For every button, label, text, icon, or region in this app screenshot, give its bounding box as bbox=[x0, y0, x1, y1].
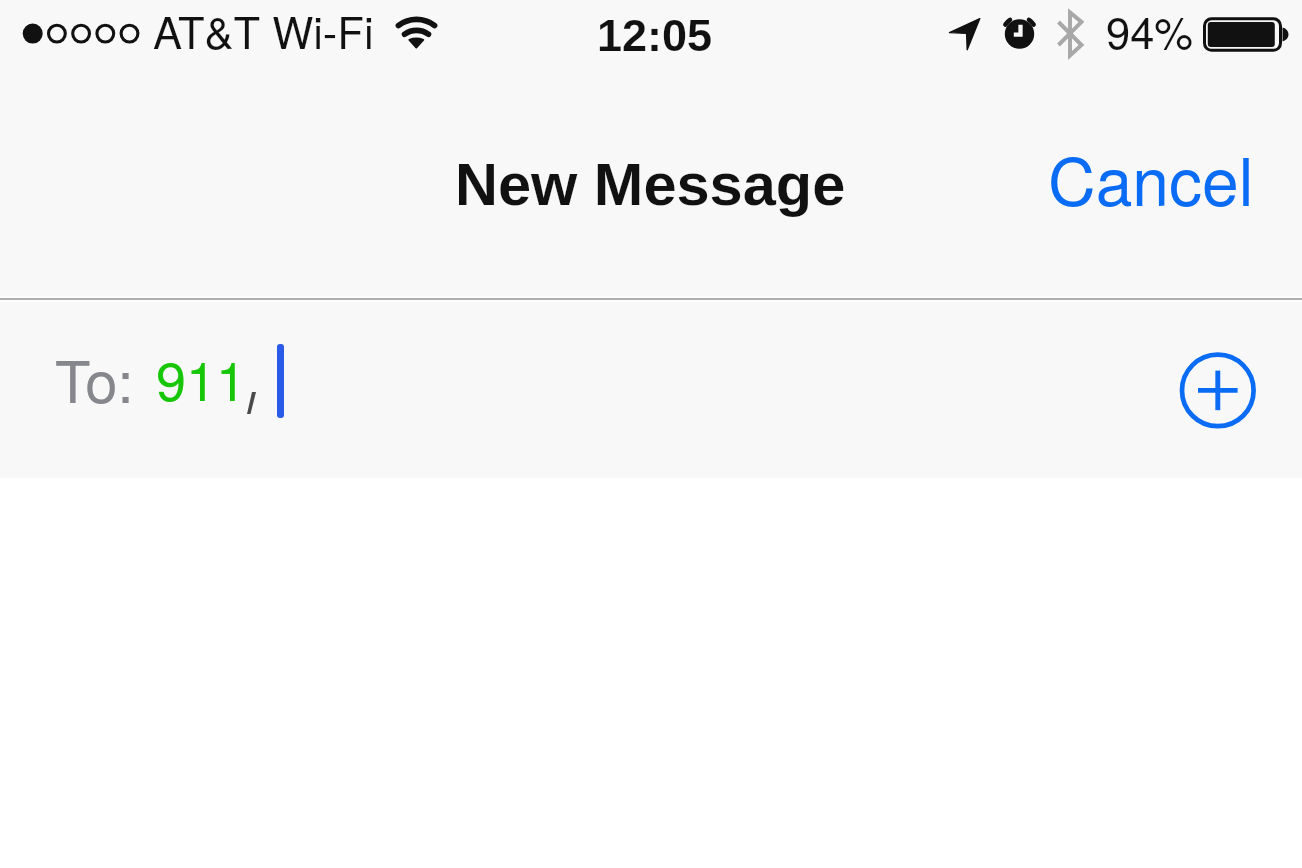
staticText: AT&T Wi-Fi bbox=[153, 0, 374, 61]
button[interactable]: Cancel bbox=[1021, 121, 1302, 244]
staticText: 94% bbox=[1106, 0, 1194, 61]
button[interactable]: To: bbox=[0, 302, 1302, 478]
staticText: New Message bbox=[455, 151, 846, 217]
button[interactable]: Add contact bbox=[1175, 347, 1261, 433]
staticText: 12:05 bbox=[597, 10, 713, 60]
staticText: Cancel bbox=[1048, 130, 1254, 225]
staticText: 911 bbox=[156, 339, 247, 416]
staticText: To: bbox=[55, 336, 134, 419]
